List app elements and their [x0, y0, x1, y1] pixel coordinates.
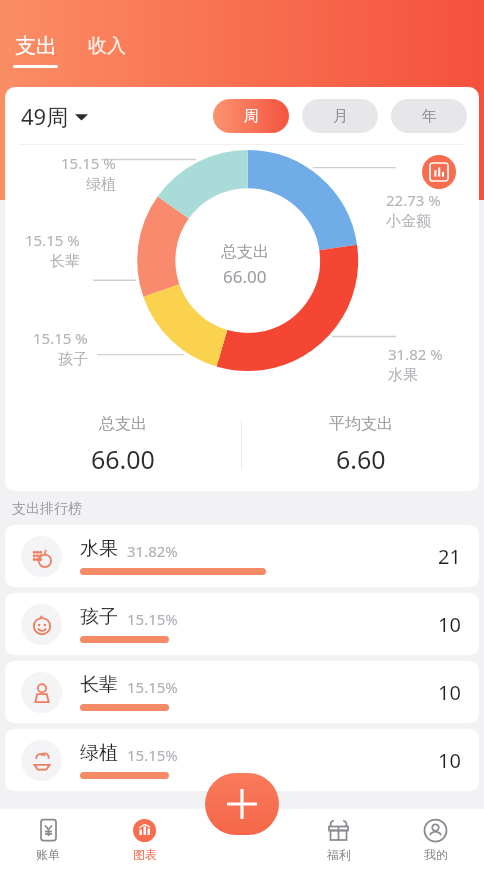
button[interactable]: 账单	[0, 809, 96, 871]
button[interactable]: 福利	[290, 809, 387, 871]
staticText: 15.15%	[127, 609, 178, 629]
staticText: 收入	[88, 34, 126, 58]
staticText: 总支出	[99, 414, 147, 434]
staticText: 账单	[36, 847, 60, 862]
button[interactable]: 孩子	[5, 593, 479, 655]
staticText: 15.15%	[127, 745, 178, 765]
staticText: 孩子	[80, 605, 118, 629]
staticText: 水果	[80, 537, 118, 561]
button[interactable]: 长辈	[5, 661, 479, 723]
staticText: 15.15 %	[25, 230, 80, 250]
staticText: 15.15%	[127, 677, 178, 697]
staticText: 绿植	[86, 175, 116, 194]
staticText: 10	[438, 747, 461, 774]
staticText: 长辈	[80, 673, 118, 697]
staticText: 66.00	[91, 442, 155, 476]
staticText: 孩子	[58, 350, 88, 369]
staticText: 15.15 %	[61, 153, 116, 173]
staticText: 小金额	[386, 212, 431, 231]
button[interactable]: 周	[213, 99, 289, 133]
button[interactable]: 绿植	[5, 729, 479, 791]
staticText: 10	[438, 679, 461, 706]
staticText: 21	[438, 543, 461, 570]
button[interactable]: Add record	[205, 773, 279, 835]
staticText: 水果	[388, 366, 418, 385]
staticText: 绿植	[80, 741, 118, 765]
button[interactable]: 年	[391, 99, 467, 133]
staticText: 总支出	[221, 242, 269, 262]
button[interactable]: 水果	[5, 525, 479, 587]
button[interactable]: 图表	[96, 809, 193, 871]
staticText: 月	[333, 107, 348, 126]
staticText: 31.82%	[127, 541, 178, 561]
staticText: 年	[422, 107, 437, 126]
staticText: 10	[438, 611, 461, 638]
staticText: 支出排行榜	[12, 500, 82, 518]
staticText: 6.60	[336, 442, 386, 476]
staticText: 周	[244, 107, 259, 126]
staticText: 22.73 %	[386, 190, 441, 210]
staticText: 49周	[21, 101, 69, 131]
staticText: 图表	[133, 847, 157, 862]
staticText: 31.82 %	[388, 344, 443, 364]
staticText: 支出	[15, 33, 57, 59]
staticText: 福利	[327, 847, 351, 862]
staticText: 我的	[424, 847, 448, 862]
staticText: 平均支出	[329, 414, 393, 434]
button[interactable]: 支出	[10, 33, 61, 68]
button[interactable]: Switch chart type	[422, 155, 456, 189]
button[interactable]: 收入	[85, 33, 129, 59]
staticText: 长辈	[50, 252, 80, 271]
button[interactable]: 月	[302, 99, 378, 133]
button[interactable]: 49周	[21, 97, 88, 135]
staticText: 66.00	[223, 265, 267, 288]
staticText: 15.15 %	[33, 328, 88, 348]
button[interactable]: 我的	[387, 809, 484, 871]
